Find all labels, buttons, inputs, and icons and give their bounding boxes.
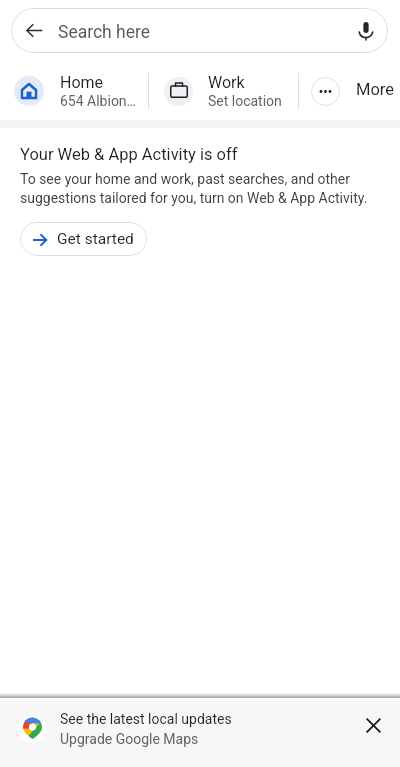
staticText: Home [60,73,104,92]
button[interactable]: Get started [20,222,147,256]
button[interactable]: Home [0,61,148,121]
staticText: See the latest local updates [60,711,232,727]
staticText: Upgrade Google Maps [60,731,199,747]
staticText: Set location [208,93,282,109]
staticText: Your Web & App Activity is off [20,145,238,164]
button[interactable]: Work [149,61,298,121]
staticText: More [356,80,395,99]
staticText: 654 Albion… [60,93,136,109]
button[interactable]: Back [11,8,56,53]
button[interactable]: Search here [56,8,343,53]
staticText: Work [208,73,245,92]
button[interactable]: More [299,61,395,121]
staticText: Get started [57,230,134,248]
button[interactable]: Dismiss [351,707,395,751]
staticText: To see your home and work, past searches… [20,171,380,207]
button[interactable]: Voice search [343,8,388,53]
staticText: Search here [58,22,151,43]
